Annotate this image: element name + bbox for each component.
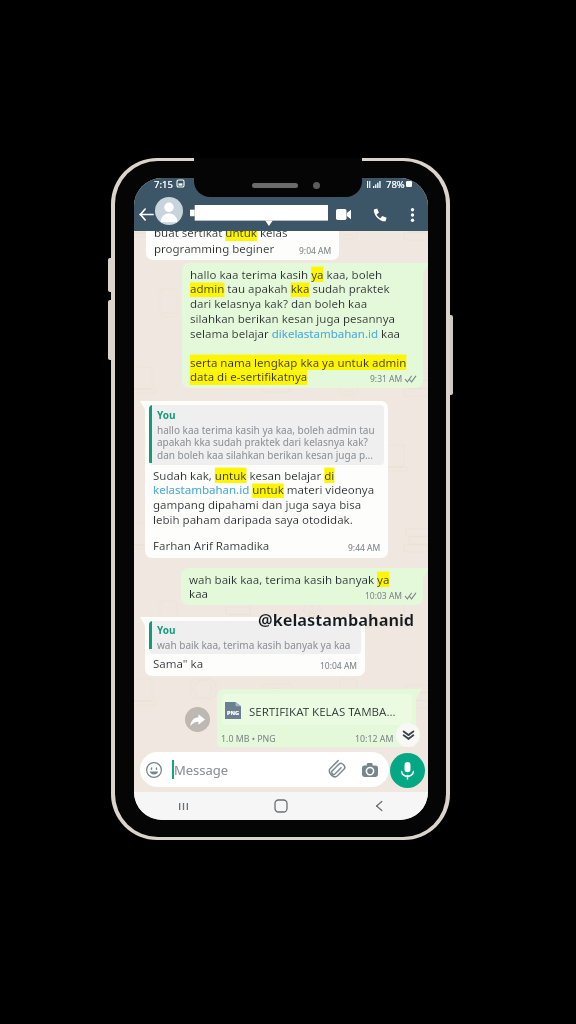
- button[interactable]: More options: [401, 198, 423, 231]
- staticText: 10:12 AM: [355, 733, 394, 745]
- button[interactable]: Back: [135, 198, 157, 231]
- staticText: hallo kaa terima kasih ya kaa, boleh adm…: [157, 423, 375, 462]
- staticText: wah baik kaa, terima kasih banyak ya kaa: [189, 572, 390, 602]
- button[interactable]: Call: [367, 198, 393, 231]
- button[interactable]: Forward: [185, 707, 210, 732]
- staticText: 78%: [386, 178, 405, 191]
- staticText: SERTIFIKAT KELAS TAMBA…: [249, 704, 396, 720]
- staticText: 9:04 AM: [299, 245, 332, 257]
- staticText: serta nama lengkap kka ya untuk admin da…: [190, 355, 407, 385]
- button[interactable]: Home: [232, 792, 330, 820]
- staticText: 9:44 AM: [348, 542, 381, 554]
- staticText: hallo kaa terima kasih ya kaa, boleh adm…: [190, 267, 401, 342]
- staticText: Sudah kak, untuk kesan belajar di kelast…: [153, 468, 375, 528]
- button[interactable]: Video call: [330, 198, 356, 231]
- staticText: buat sertikat untuk kelas: [154, 231, 288, 241]
- staticText: wah baik kaa, terima kasih banyak ya kaa: [157, 638, 351, 652]
- button[interactable]: Recents: [134, 792, 232, 820]
- staticText: 10:04 AM: [320, 660, 358, 672]
- staticText: programming beginer: [154, 241, 275, 257]
- button[interactable]: Contact profile: [155, 197, 183, 225]
- button[interactable]: Back: [330, 792, 428, 820]
- staticText: 1.0 MB • PNG: [221, 733, 276, 745]
- staticText: 9:31 AM: [370, 373, 403, 385]
- staticText: Farhan Arif Ramadika: [153, 538, 270, 554]
- staticText: Message: [174, 761, 229, 779]
- button[interactable]: Message: [140, 752, 389, 787]
- staticText: You: [157, 408, 176, 422]
- button[interactable]: Voice message: [390, 753, 425, 788]
- staticText: 7:15: [154, 178, 173, 191]
- staticText: PNG: [227, 709, 240, 717]
- staticText: You: [157, 623, 176, 637]
- button[interactable]: Attach: [326, 759, 346, 780]
- staticText: 10:03 AM: [365, 590, 403, 602]
- button[interactable]: Camera: [360, 759, 380, 780]
- staticText: Sama" ka: [153, 656, 204, 672]
- button[interactable]: Scroll to bottom: [396, 723, 420, 747]
- staticText: @kelastambahanid: [258, 609, 415, 631]
